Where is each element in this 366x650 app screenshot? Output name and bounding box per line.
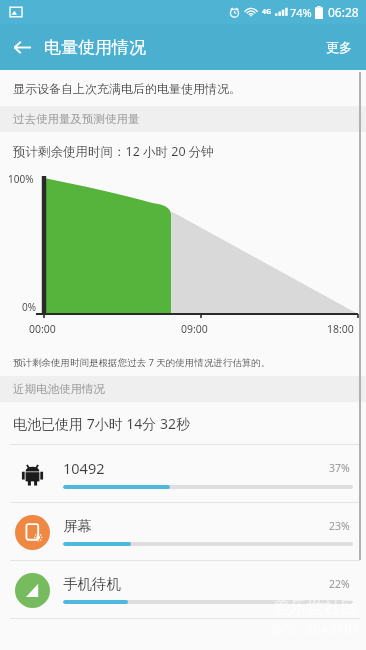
staticText: 100% — [8, 172, 34, 186]
staticText: 显示设备自上次充满电后的电量使用情况。 — [13, 81, 241, 96]
staticText: 更多 — [326, 39, 352, 55]
staticText: 74% — [290, 5, 312, 20]
button[interactable]: Back — [0, 24, 44, 70]
staticText: 盖乐世社区 — [273, 597, 358, 618]
button[interactable]: 手机待机 — [0, 561, 366, 618]
staticText: 37% — [329, 461, 350, 475]
staticText: 手机待机 — [63, 575, 329, 593]
staticText: 09:00 — [181, 322, 208, 336]
button[interactable]: 屏幕 — [0, 503, 366, 560]
staticText: 屏幕 — [63, 517, 329, 535]
staticText: 4G — [262, 7, 272, 17]
staticText: 10492 — [63, 458, 329, 478]
staticText: 预计剩余使用时间是根据您过去 7 天的使用情况进行估算的。 — [13, 356, 271, 369]
staticText: 电池已使用 7小时 14分 32秒 — [13, 414, 190, 433]
staticText: 00:00 — [29, 322, 56, 336]
staticText: 18:00 — [327, 322, 354, 336]
staticText: 过去使用量及预测使用量 — [13, 112, 140, 126]
button[interactable]: 更多 — [312, 24, 366, 70]
staticText: 近期电池使用情况 — [13, 382, 105, 396]
staticText: 电量使用情况 — [44, 37, 146, 58]
staticText: 23% — [329, 519, 350, 533]
staticText: 06:28 — [328, 4, 359, 20]
staticText: 预计剩余使用时间：12 小时 20 分钟 — [13, 143, 214, 160]
button[interactable]: 10492 — [0, 445, 366, 502]
staticText: 0% — [22, 300, 37, 314]
staticText: 22% — [329, 577, 350, 591]
